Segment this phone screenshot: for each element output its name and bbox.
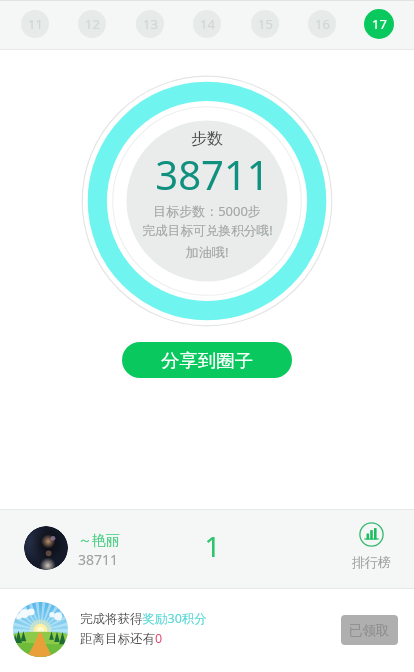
staticText: 16 xyxy=(315,15,330,33)
button[interactable]: 12 xyxy=(78,10,106,38)
staticText: 14 xyxy=(200,15,215,33)
staticText: 距离目标还有0 xyxy=(80,630,163,647)
staticText: 分享到圈子 xyxy=(161,349,253,372)
staticText: 15 xyxy=(258,15,273,33)
button[interactable]: 排行榜 xyxy=(341,522,402,570)
staticText: 12 xyxy=(85,15,100,33)
staticText: 完成目标可兑换积分哦! xyxy=(142,221,273,238)
staticText: 步数 xyxy=(191,129,223,149)
button[interactable]: 17 xyxy=(364,9,394,39)
button[interactable]: 15 xyxy=(251,10,279,38)
staticText: 38711 xyxy=(78,550,119,569)
staticText: 17 xyxy=(372,15,387,33)
button[interactable]: 已领取 xyxy=(341,615,398,645)
staticText: 38711 xyxy=(155,147,270,201)
button[interactable]: 14 xyxy=(193,10,221,38)
staticText: 目标步数：5000步 xyxy=(153,202,261,220)
staticText: 11 xyxy=(28,15,43,33)
staticText: 加油哦! xyxy=(185,243,229,261)
staticText: 排行榜 xyxy=(352,554,391,570)
button[interactable]: 16 xyxy=(308,10,336,38)
staticText: 13 xyxy=(143,15,158,33)
button[interactable]: 11 xyxy=(21,10,49,38)
staticText: 完成将获得奖励30积分 xyxy=(80,610,207,627)
button[interactable]: 分享到圈子 xyxy=(122,342,292,378)
other: 排行榜 xyxy=(359,522,384,547)
button[interactable]: 13 xyxy=(136,10,164,38)
staticText: 1 xyxy=(204,527,221,565)
staticText: 已领取 xyxy=(349,622,390,639)
staticText: ～艳丽 xyxy=(78,532,120,550)
button[interactable]: 用户头像 xyxy=(0,509,414,588)
button[interactable]: 用户头像 xyxy=(24,526,68,570)
